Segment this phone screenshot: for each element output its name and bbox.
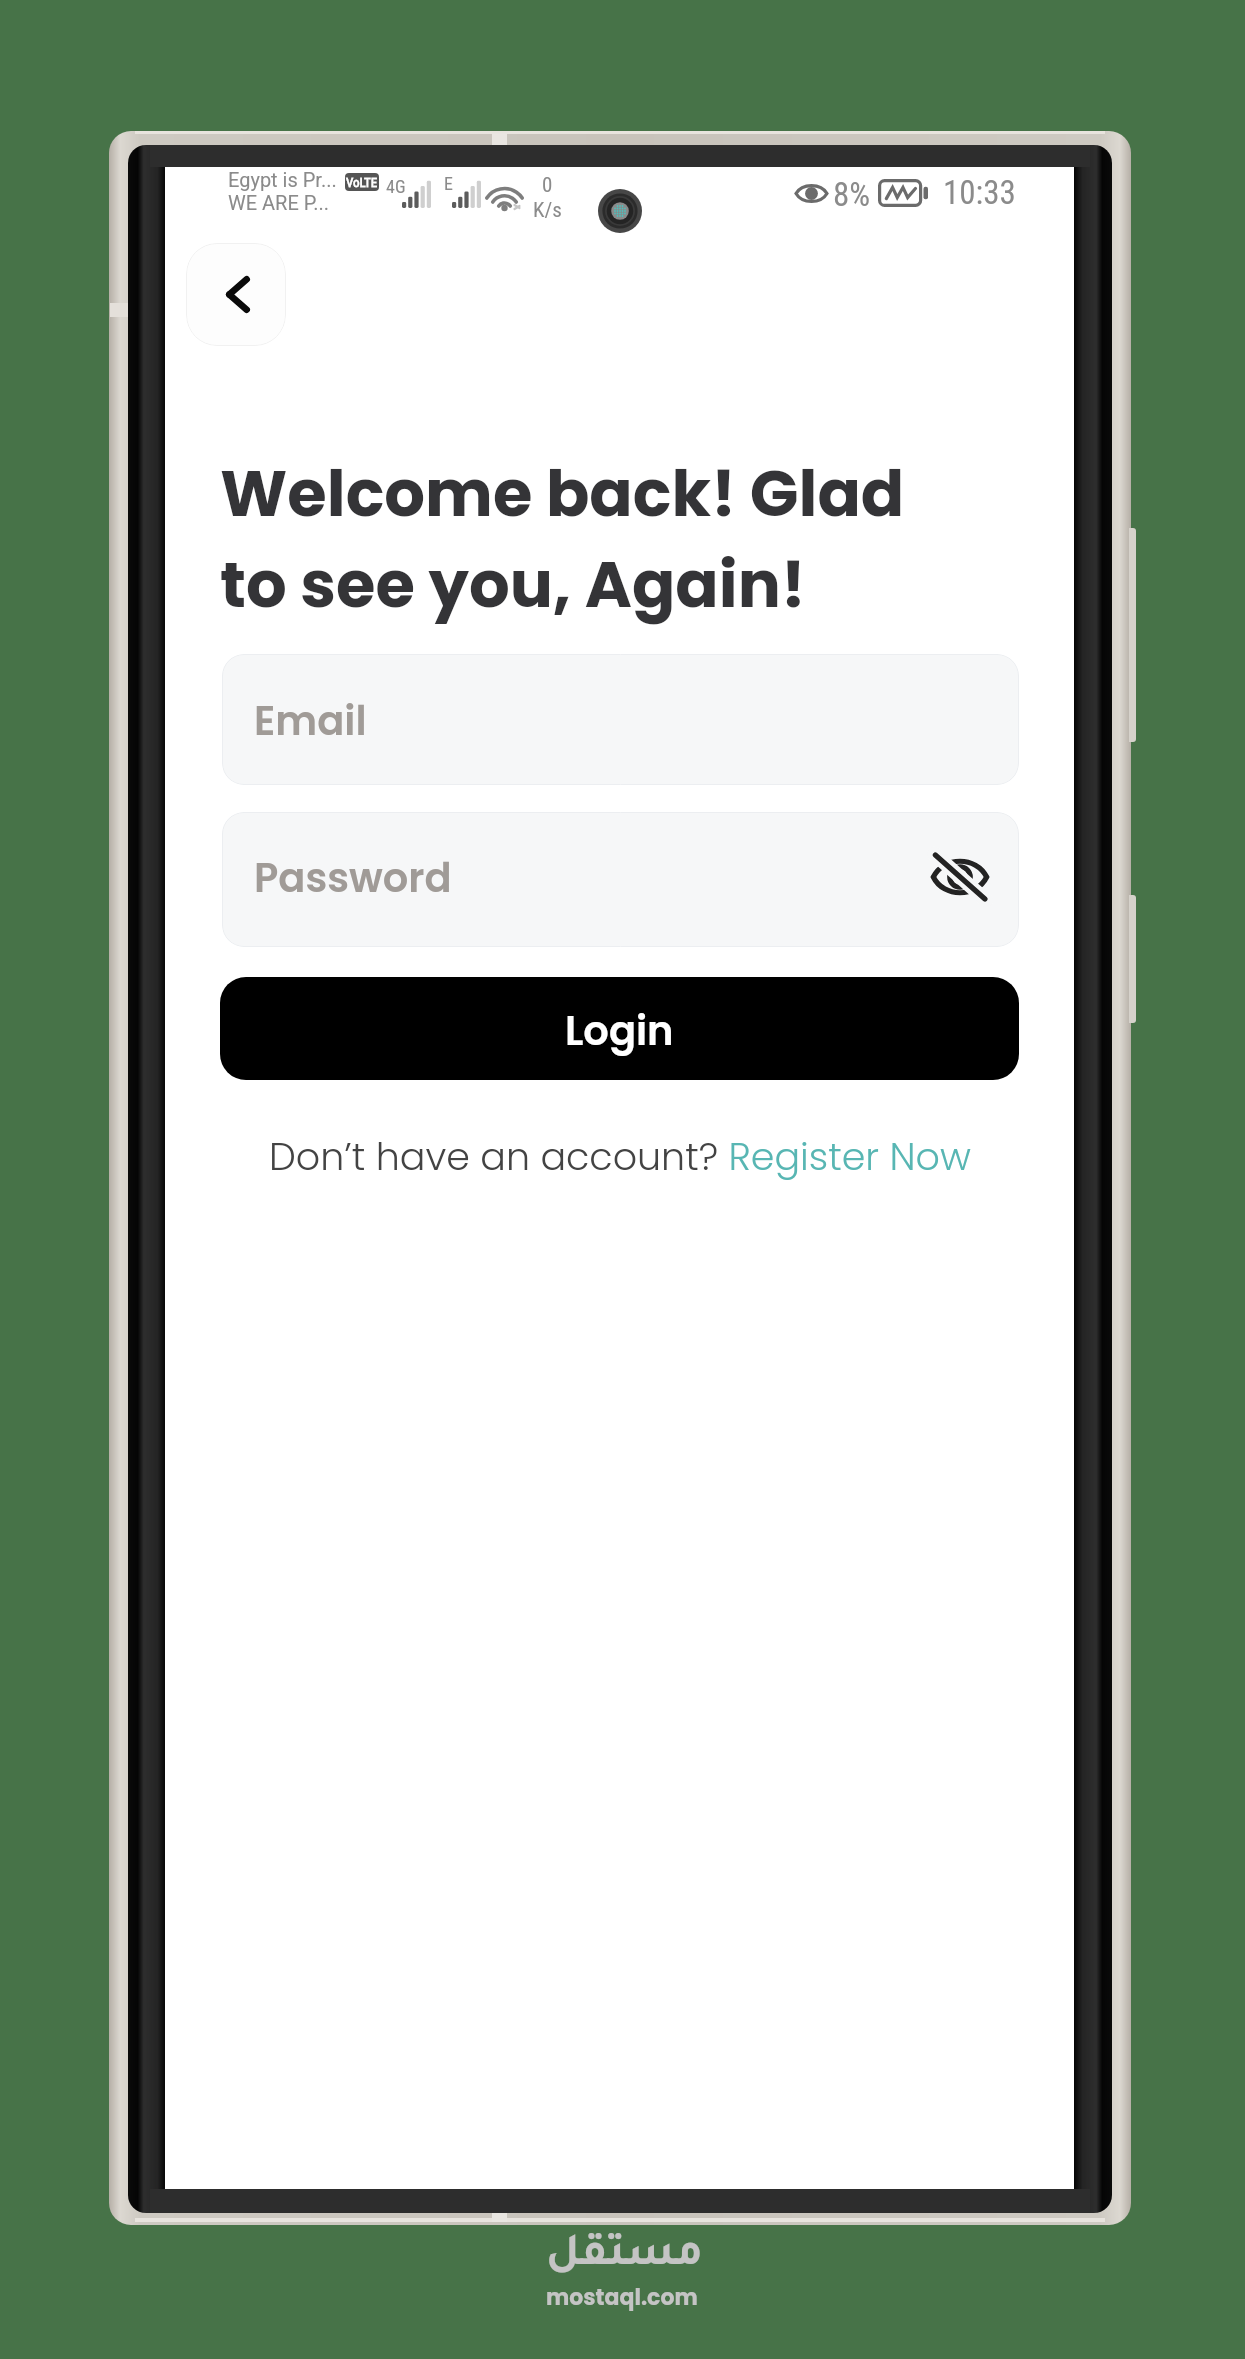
button[interactable]: Show password bbox=[929, 846, 991, 908]
staticText: E bbox=[444, 173, 453, 194]
staticText: Email bbox=[254, 693, 367, 749]
staticText: K/s bbox=[533, 198, 562, 223]
button[interactable]: Email bbox=[222, 654, 1019, 785]
button[interactable]: Don’t have an account? Register Now bbox=[165, 1125, 1074, 1187]
button[interactable]: Login bbox=[220, 977, 1019, 1080]
staticText: مستقل bbox=[546, 2234, 704, 2280]
button[interactable]: Back bbox=[186, 243, 286, 346]
staticText: Don’t have an account? Register Now bbox=[269, 1130, 971, 1183]
staticText: 4G bbox=[386, 176, 406, 197]
staticText: 0 bbox=[542, 173, 553, 198]
staticText: Password bbox=[254, 850, 452, 906]
staticText: WE ARE P... bbox=[228, 191, 330, 214]
button[interactable]: Password bbox=[222, 812, 1019, 947]
staticText: mostaql.com bbox=[546, 2282, 698, 2313]
staticText: Welcome back! Glad to see you, Again! bbox=[220, 449, 905, 629]
staticText: 8% bbox=[833, 175, 871, 214]
staticText: VoLTE bbox=[346, 175, 378, 190]
staticText: Egypt is Pr... bbox=[228, 168, 337, 191]
staticText: 10:33 bbox=[943, 173, 1016, 212]
staticText: Login bbox=[565, 1003, 674, 1059]
